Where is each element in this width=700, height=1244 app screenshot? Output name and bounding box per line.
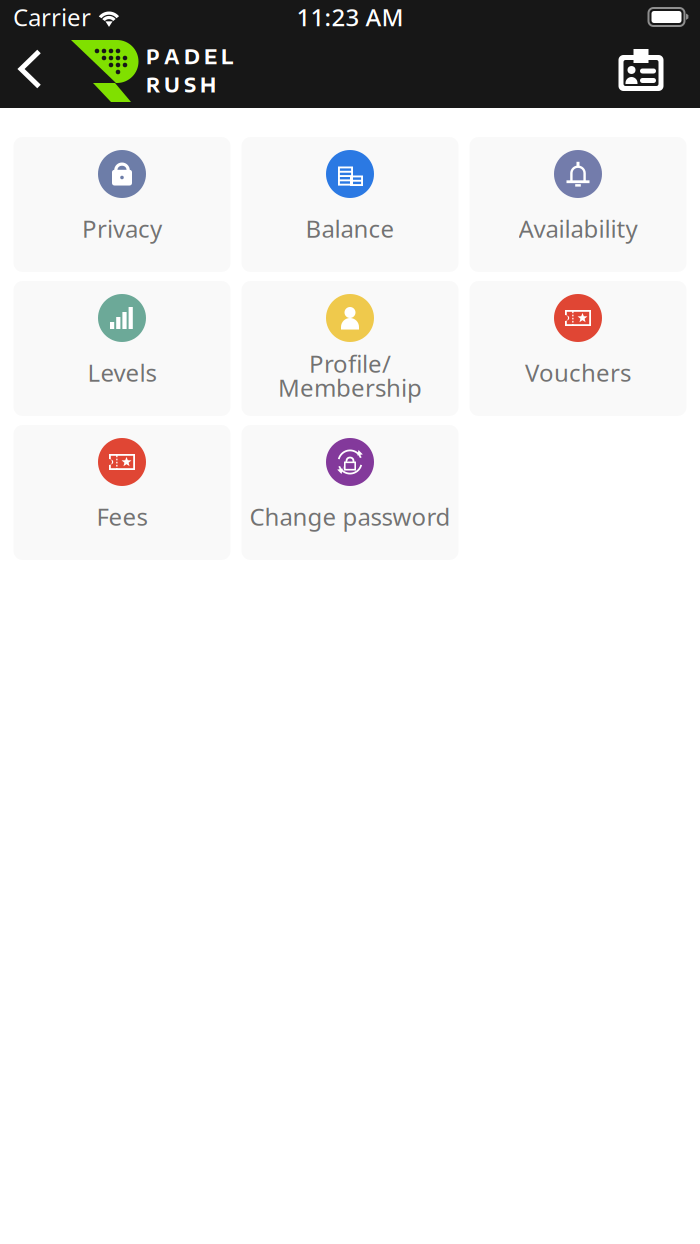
staticText: Fees: [96, 501, 147, 532]
button[interactable]: Back: [2, 39, 58, 99]
staticText: 11:23 AM: [296, 1, 403, 33]
button[interactable]: Fees: [13, 425, 230, 560]
button[interactable]: Membership card: [611, 42, 671, 98]
button[interactable]: Change password: [241, 425, 458, 560]
button[interactable]: Levels: [13, 281, 230, 416]
staticText: Carrier: [13, 1, 91, 33]
button[interactable]: Availability: [469, 137, 686, 272]
button[interactable]: Balance: [241, 137, 458, 272]
staticText: Membership: [278, 372, 422, 403]
staticText: Availability: [518, 213, 637, 244]
button[interactable]: Vouchers: [469, 281, 686, 416]
staticText: P A D E L: [146, 45, 233, 68]
button[interactable]: Profile/: [241, 281, 458, 416]
staticText: Profile/: [309, 348, 391, 379]
staticText: R U S H: [146, 73, 216, 97]
staticText: Levels: [87, 357, 156, 388]
staticText: Privacy: [82, 213, 162, 244]
staticText: Balance: [305, 213, 394, 244]
staticText: Vouchers: [525, 357, 631, 388]
staticText: Change password: [249, 501, 450, 532]
button[interactable]: Privacy: [13, 137, 230, 272]
